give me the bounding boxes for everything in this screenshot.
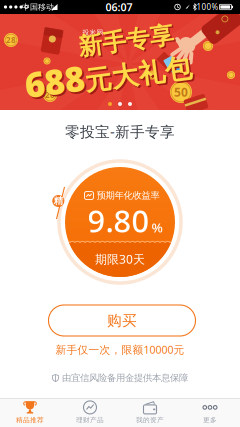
staticText: 零投宝-新手专享 bbox=[65, 122, 175, 141]
staticText: 新手专享 bbox=[79, 28, 175, 57]
staticText: 100% bbox=[196, 2, 218, 12]
staticText: 更多 bbox=[203, 416, 217, 424]
staticText: 预期年化收益率 bbox=[96, 190, 159, 201]
button[interactable]: 我的资产 bbox=[120, 398, 180, 427]
button[interactable]: 购买 bbox=[48, 305, 195, 336]
button[interactable]: 新手专享 688元大礼包 bbox=[0, 14, 240, 110]
staticText: 购买 bbox=[107, 311, 137, 329]
staticText: 元大礼包 bbox=[86, 64, 194, 97]
staticText: 688 bbox=[24, 51, 84, 97]
staticText: 元大礼包 bbox=[84, 62, 192, 95]
staticText: 06:07 bbox=[105, 0, 132, 14]
staticText: 精品推荐 bbox=[16, 416, 44, 424]
staticText: 期限30天 bbox=[95, 251, 145, 267]
staticText: 由宜信风险备用金提供本息保障 bbox=[62, 372, 188, 384]
staticText: 理财产品 bbox=[76, 416, 104, 424]
staticText: 新手专享 bbox=[78, 26, 174, 56]
staticText: 精 bbox=[54, 195, 63, 207]
staticText: 688 bbox=[26, 53, 86, 99]
staticText: 投米网 bbox=[82, 28, 103, 37]
staticText: 新手仅一次，限额10000元 bbox=[55, 342, 184, 357]
button[interactable]: 理财产品 bbox=[60, 398, 120, 427]
staticText: 中国移动 bbox=[22, 2, 54, 12]
staticText: 28 bbox=[6, 35, 16, 45]
staticText: 我的资产 bbox=[136, 416, 164, 424]
button[interactable]: 精品推荐 bbox=[0, 398, 60, 427]
staticText: % bbox=[151, 218, 162, 236]
staticText: 50 bbox=[174, 84, 188, 100]
staticText: 9.80 bbox=[87, 200, 149, 241]
staticText: 20 bbox=[45, 90, 55, 100]
button[interactable]: 更多 bbox=[180, 398, 240, 427]
